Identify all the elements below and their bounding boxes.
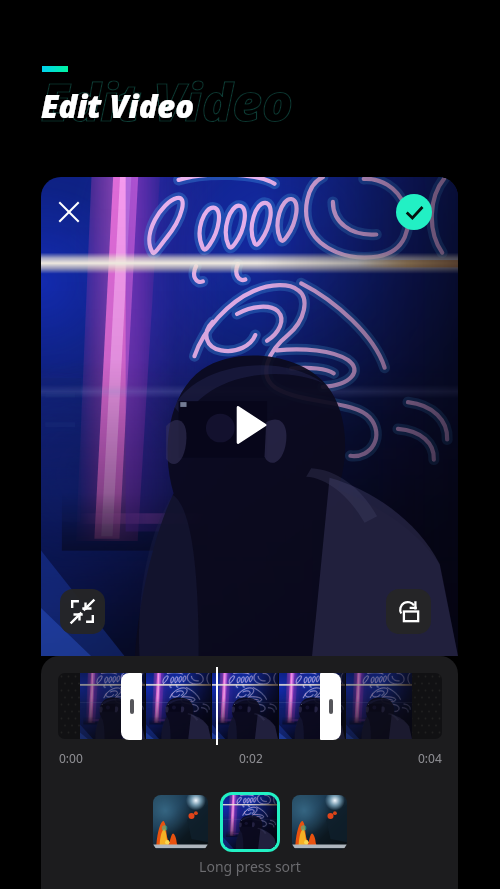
button[interactable]: [292, 795, 347, 850]
button[interactable]: Trim end: [320, 673, 341, 740]
staticText: Long press sort: [0, 857, 500, 876]
staticText: 0:02: [239, 750, 263, 766]
button[interactable]: [223, 795, 277, 849]
button[interactable]: Play: [227, 402, 273, 448]
button[interactable]: Close: [48, 191, 90, 233]
button[interactable]: Confirm: [396, 194, 432, 230]
staticText: 0:04: [418, 750, 442, 766]
button[interactable]: Rotate: [386, 589, 431, 634]
button[interactable]: Fit to screen: [60, 589, 105, 634]
button[interactable]: Trim start: [121, 673, 142, 740]
button[interactable]: [153, 795, 208, 850]
staticText: Edit Video: [41, 85, 195, 127]
staticText: 0:00: [59, 750, 83, 766]
staticText: Edit Video: [41, 66, 293, 135]
